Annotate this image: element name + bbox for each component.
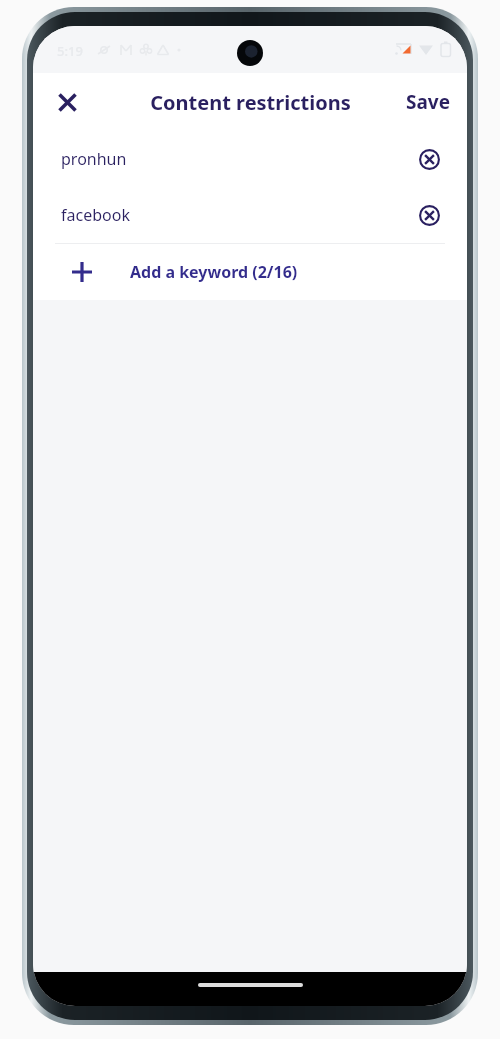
staticText: Content restrictions bbox=[150, 89, 351, 116]
staticText: Add a keyword (2/16) bbox=[130, 261, 298, 283]
button[interactable]: Save bbox=[390, 79, 467, 125]
button[interactable]: Close bbox=[43, 78, 91, 126]
button[interactable]: Add a keyword (2/16) bbox=[33, 244, 467, 300]
staticText: 5:19 bbox=[57, 42, 83, 60]
button[interactable]: facebook bbox=[33, 187, 467, 243]
staticText: facebook bbox=[61, 204, 130, 226]
staticText: Save bbox=[406, 89, 451, 115]
staticText: pronhun bbox=[61, 148, 127, 170]
button[interactable]: pronhun bbox=[33, 131, 467, 187]
button[interactable]: Remove pronhun bbox=[409, 139, 449, 179]
button[interactable]: Remove facebook bbox=[409, 195, 449, 235]
